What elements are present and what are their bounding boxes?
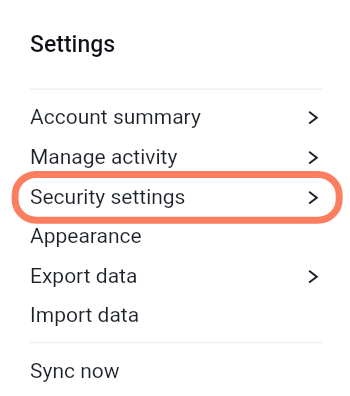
staticText: Export data — [30, 264, 138, 289]
staticText: Manage activity — [30, 145, 178, 170]
other: Open Export data — [308, 269, 318, 283]
button[interactable]: Security settings — [0, 177, 350, 217]
button[interactable]: Import data — [0, 295, 350, 335]
staticText: Import data — [30, 303, 140, 328]
staticText: Settings — [30, 31, 116, 58]
button[interactable]: Export data — [0, 256, 350, 296]
button[interactable]: Account summary — [0, 97, 350, 137]
staticText: Appearance — [30, 224, 142, 249]
staticText: Account summary — [30, 105, 201, 130]
button[interactable]: Appearance — [0, 216, 350, 256]
button[interactable]: Manage activity — [0, 137, 350, 177]
other: Open Security settings — [308, 190, 318, 204]
staticText: Sync now — [30, 359, 120, 384]
staticText: Security settings — [30, 185, 186, 210]
other: Open Account summary — [308, 110, 318, 124]
other: Open Manage activity — [308, 150, 318, 164]
button[interactable]: Sync now — [0, 351, 350, 391]
